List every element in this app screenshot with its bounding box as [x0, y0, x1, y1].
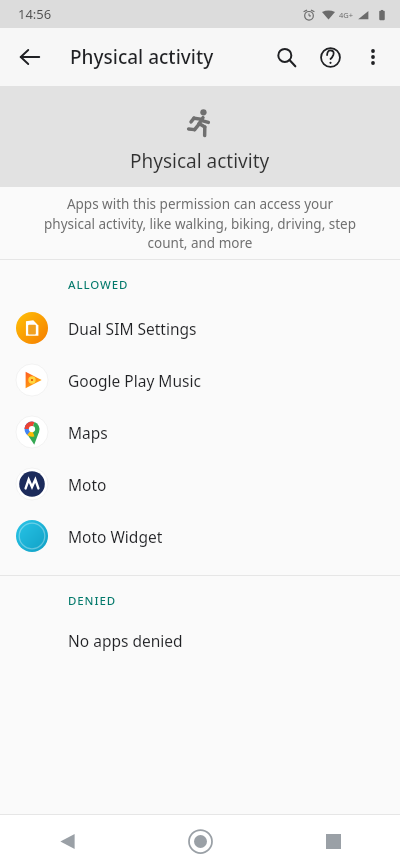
staticText: Moto: [68, 474, 107, 495]
staticText: Moto Widget: [68, 526, 163, 547]
staticText: Physical activity: [70, 44, 214, 70]
button[interactable]: Back: [8, 35, 52, 79]
button[interactable]: Dual SIM Settings: [0, 302, 400, 354]
button[interactable]: Recent apps: [267, 815, 400, 867]
button[interactable]: Moto Widget: [0, 510, 400, 562]
button[interactable]: Maps: [0, 406, 400, 458]
staticText: Physical activity: [130, 148, 270, 174]
button[interactable]: More options: [352, 36, 394, 78]
staticText: Apps with this permission can access you…: [42, 195, 358, 252]
staticText: 4G+: [339, 10, 354, 20]
staticText: Google Play Music: [68, 370, 201, 391]
staticText: 14:56: [18, 5, 52, 23]
button[interactable]: No apps denied: [0, 618, 400, 662]
button[interactable]: Help: [308, 35, 352, 79]
button[interactable]: Moto: [0, 458, 400, 510]
staticText: Maps: [68, 422, 108, 443]
button[interactable]: Google Play Music: [0, 354, 400, 406]
button[interactable]: Search: [264, 35, 308, 79]
staticText: DENIED: [68, 593, 117, 609]
staticText: ALLOWED: [68, 277, 129, 293]
button[interactable]: Home: [134, 815, 267, 867]
button[interactable]: Back: [0, 815, 134, 867]
staticText: Dual SIM Settings: [68, 318, 197, 339]
staticText: No apps denied: [68, 630, 183, 651]
